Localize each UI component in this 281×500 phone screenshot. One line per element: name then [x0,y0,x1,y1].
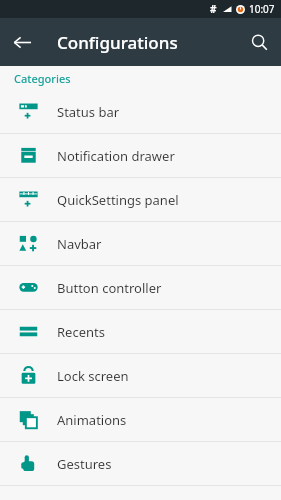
button[interactable]: Status bar [0,90,281,133]
button[interactable]: Navbar [0,222,281,265]
button[interactable]: Button controller [0,266,281,309]
button[interactable]: Lock screen [0,354,281,397]
staticText: Configurations [57,31,178,54]
button[interactable]: Gestures [0,442,281,485]
staticText: Notification drawer [57,147,175,165]
button[interactable]: Animations [0,398,281,441]
staticText: # [210,2,217,16]
staticText: Recents [57,323,105,341]
button[interactable]: Search [237,20,281,64]
staticText: 10:07 [249,2,275,16]
button[interactable]: QuickSettings panel [0,178,281,221]
button[interactable]: Back [0,20,44,64]
staticText: Categories [14,71,71,86]
staticText: Animations [57,411,127,429]
button[interactable]: Notification drawer [0,134,281,177]
staticText: Button controller [57,279,162,297]
button[interactable]: Recents [0,310,281,353]
staticText: Navbar [57,235,102,253]
staticText: Lock screen [57,367,129,385]
staticText: QuickSettings panel [57,191,179,209]
staticText: Status bar [57,103,120,121]
staticText: Gestures [57,455,112,473]
